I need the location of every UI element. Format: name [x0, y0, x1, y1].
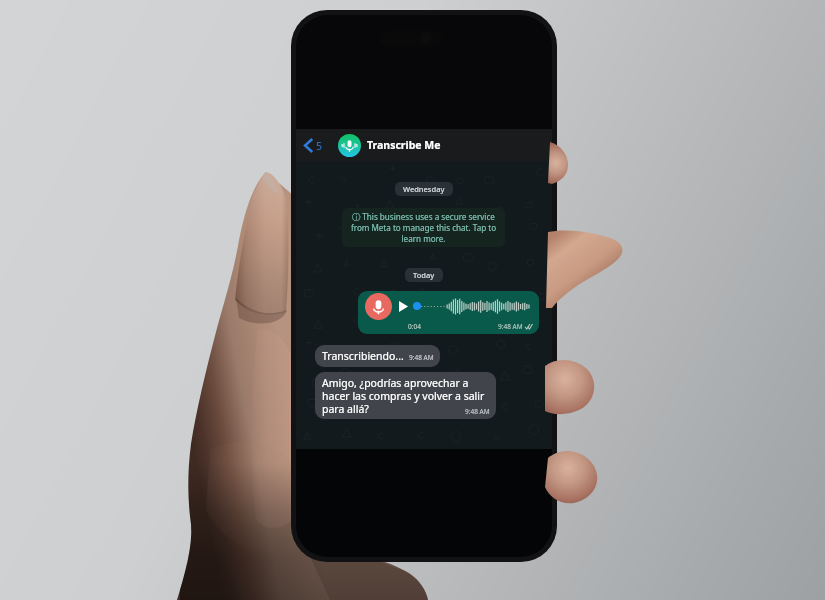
staticText: Transcribiendo... — [322, 349, 404, 363]
button[interactable]: Back — [302, 134, 325, 157]
other: Back — [304, 138, 313, 153]
staticText: 9:48 AM — [409, 353, 434, 362]
button[interactable]: Today — [405, 268, 443, 282]
button[interactable]: Wednesday — [395, 182, 453, 196]
staticText: 9:48 AM — [498, 322, 523, 331]
staticText: Wednesday — [403, 184, 445, 194]
staticText: 0:04 — [408, 322, 421, 331]
other: Play — [399, 301, 408, 312]
button[interactable]: ⓘ This business uses a secure service fr… — [342, 208, 505, 247]
staticText: ⓘ This business uses a secure service fr… — [347, 211, 500, 244]
staticText: Amigo, ¿podrías aprovechar a hacer las c… — [322, 376, 490, 416]
button[interactable]: Amigo, ¿podrías aprovechar a hacer las c… — [315, 372, 496, 419]
staticText: 9:48 AM — [465, 407, 490, 416]
staticText: Transcribe Me — [367, 138, 441, 152]
button[interactable]: Transcribiendo... — [315, 345, 440, 367]
staticText: Today — [413, 270, 435, 280]
button[interactable]: Play — [358, 291, 539, 334]
staticText: 5 — [316, 139, 323, 153]
